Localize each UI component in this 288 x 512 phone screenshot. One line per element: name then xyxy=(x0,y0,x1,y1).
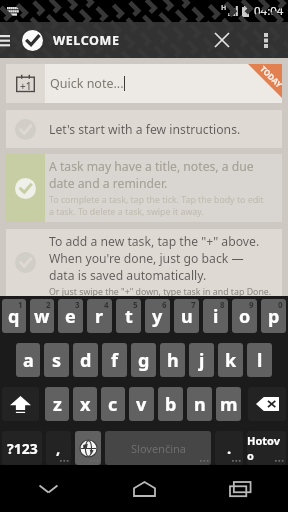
staticText: WELCOME xyxy=(53,32,120,49)
button[interactable]: Change keyboard language xyxy=(75,431,101,465)
button[interactable]: ?123 xyxy=(2,431,42,465)
button[interactable]: m xyxy=(216,387,241,421)
staticText: 0 xyxy=(278,299,283,310)
staticText: 6 xyxy=(162,299,167,310)
button[interactable]: Home xyxy=(96,465,192,512)
button[interactable]: j xyxy=(189,343,214,377)
button[interactable]: More options xyxy=(244,22,288,58)
button[interactable]: s xyxy=(44,343,69,377)
staticText: a task. To delete a task, swipe it away. xyxy=(49,206,204,218)
button[interactable]: z xyxy=(45,387,69,421)
button[interactable]: w xyxy=(30,299,54,333)
staticText: i xyxy=(213,304,219,329)
staticText: b xyxy=(165,392,177,417)
button[interactable]: i xyxy=(203,299,228,333)
button[interactable]: r xyxy=(87,299,112,333)
button[interactable]: Toggle task complete xyxy=(6,110,45,148)
staticText: Or just swipe the "+" down, type task in… xyxy=(49,286,272,296)
staticText: 7 xyxy=(191,299,196,310)
button[interactable]: g xyxy=(131,343,156,377)
staticText: Hotovo xyxy=(247,433,286,463)
staticText: a xyxy=(23,348,34,373)
button[interactable]: t xyxy=(116,299,141,333)
staticText: s xyxy=(52,348,62,373)
staticText: 2 xyxy=(46,299,51,310)
staticText: w xyxy=(34,304,50,329)
staticText: l xyxy=(257,348,263,373)
button[interactable]: Hotovo xyxy=(247,431,286,465)
button[interactable]: c xyxy=(101,387,125,421)
staticText: data is saved automatically. xyxy=(49,267,207,284)
staticText: 8 xyxy=(220,299,225,310)
staticText: m xyxy=(220,392,238,417)
staticText: z xyxy=(53,392,62,417)
staticText: r xyxy=(95,304,104,329)
button[interactable]: Close xyxy=(200,22,244,58)
staticText: g xyxy=(138,348,150,373)
button[interactable]: u xyxy=(174,299,199,333)
button[interactable]: Slovenčina xyxy=(105,431,211,465)
staticText: To complete a task, tap the tick. Tap th… xyxy=(49,194,264,206)
button[interactable]: f xyxy=(102,343,127,377)
button[interactable]: , xyxy=(46,431,71,465)
staticText: When you're done, just go back — xyxy=(49,250,244,267)
staticText: h xyxy=(167,348,179,373)
staticText: TODAY xyxy=(258,63,285,90)
staticText: u xyxy=(181,304,193,329)
button[interactable]: b xyxy=(158,387,183,421)
staticText: Let's start with a few instructions. xyxy=(49,121,241,138)
staticText: , xyxy=(56,438,61,458)
staticText: A task may have a title, notes, a due xyxy=(49,158,254,175)
staticText: . xyxy=(227,438,232,458)
staticText: 3 xyxy=(75,299,80,310)
staticText: x xyxy=(80,392,91,417)
button[interactable]: Toggle task complete xyxy=(6,154,45,222)
staticText: 5 xyxy=(133,299,138,310)
button[interactable]: Add task for today xyxy=(6,64,45,103)
staticText: 1 xyxy=(18,299,23,310)
button[interactable]: h xyxy=(160,343,185,377)
staticText: 4 xyxy=(104,299,109,310)
button[interactable]: q xyxy=(2,299,26,333)
button[interactable]: Toggle task complete xyxy=(6,229,45,296)
staticText: k xyxy=(225,348,237,373)
staticText: f xyxy=(111,348,118,373)
button[interactable]: Toggle task complete xyxy=(6,154,282,222)
button[interactable]: Open navigation drawer xyxy=(0,22,16,58)
button[interactable]: Hide keyboard xyxy=(0,465,96,512)
staticText: n xyxy=(194,392,206,417)
staticText: H xyxy=(221,3,227,13)
staticText: j xyxy=(199,348,205,373)
button[interactable]: Backspace xyxy=(248,387,286,421)
button[interactable]: x xyxy=(73,387,97,421)
staticText: e xyxy=(65,304,76,329)
button[interactable]: Toggle task complete xyxy=(6,110,282,148)
staticText: o xyxy=(239,304,251,329)
staticText: p xyxy=(268,304,280,329)
button[interactable]: Toggle task complete xyxy=(6,229,282,296)
button[interactable]: p xyxy=(261,299,286,333)
button[interactable]: e xyxy=(58,299,83,333)
button[interactable]: a xyxy=(16,343,40,377)
button[interactable]: Recent apps xyxy=(192,465,288,512)
staticText: d xyxy=(80,348,92,373)
button[interactable]: n xyxy=(187,387,212,421)
staticText: 9 xyxy=(249,299,254,310)
button[interactable]: v xyxy=(129,387,154,421)
button[interactable]: o xyxy=(232,299,257,333)
button[interactable]: . xyxy=(215,431,243,465)
button[interactable]: d xyxy=(73,343,98,377)
staticText: t xyxy=(125,304,133,329)
staticText: y xyxy=(152,304,163,329)
staticText: v xyxy=(136,392,147,417)
button[interactable]: Add task for today xyxy=(6,64,282,103)
button[interactable]: Shift xyxy=(2,387,39,421)
staticText: ?123 xyxy=(7,439,38,458)
staticText: 04:04 xyxy=(254,3,284,19)
staticText: c xyxy=(108,392,118,417)
button[interactable]: y xyxy=(145,299,170,333)
button[interactable]: l xyxy=(247,343,272,377)
staticText: q xyxy=(8,304,20,329)
button[interactable]: k xyxy=(218,343,243,377)
staticText: +1 xyxy=(20,79,32,93)
